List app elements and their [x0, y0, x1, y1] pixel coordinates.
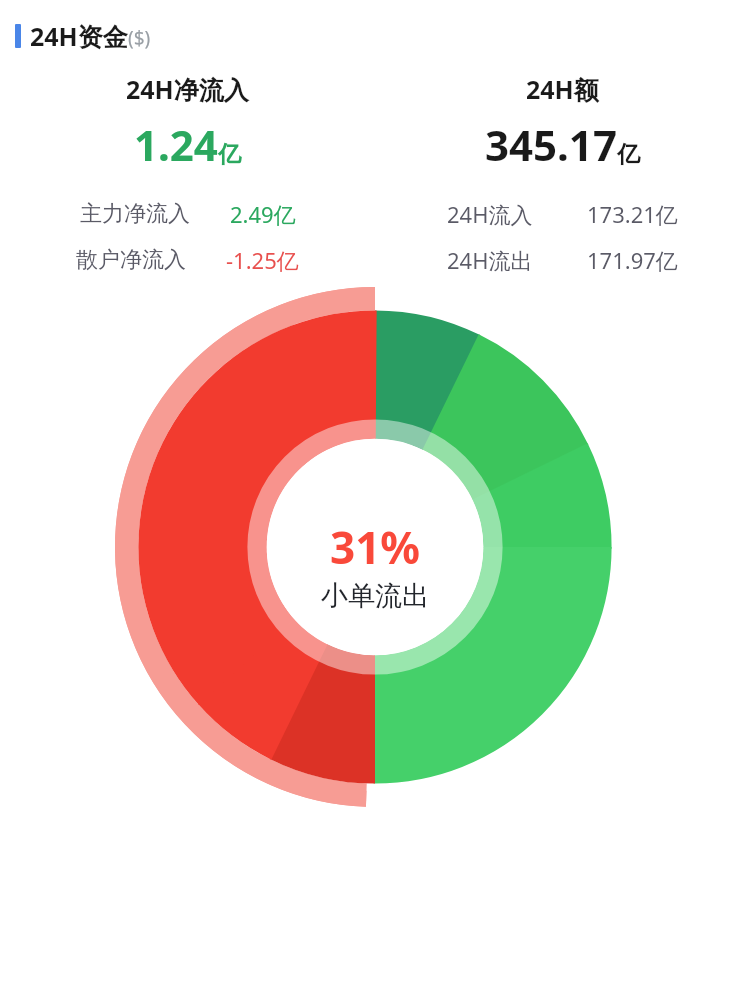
staticText: 24H资金 — [30, 19, 128, 53]
staticText: 24H额 — [526, 72, 599, 106]
staticText: 2.49亿 — [230, 199, 296, 229]
staticText: 345.17 — [485, 116, 617, 173]
staticText: 24H流入 — [447, 199, 587, 229]
staticText: ($) — [128, 25, 151, 51]
staticText: 小单流出 — [321, 579, 429, 613]
button[interactable]: 24H流入 — [447, 199, 678, 229]
staticText: 173.21亿 — [587, 199, 678, 229]
staticText: 主力净流入 — [80, 200, 230, 228]
button[interactable]: 主力净流入 — [80, 199, 296, 229]
button[interactable]: 24H额 — [375, 72, 750, 275]
staticText: 1.24 — [134, 116, 218, 173]
staticText: 亿 — [617, 140, 640, 169]
staticText: -1.25亿 — [226, 245, 299, 275]
button[interactable]: 散户净流入 — [76, 245, 299, 275]
button[interactable]: 24小时资金流向占比环形图 — [115, 287, 635, 807]
staticText: 24H净流入 — [126, 72, 249, 106]
staticText: 31% — [330, 517, 421, 577]
staticText: 散户净流入 — [76, 246, 226, 274]
button[interactable]: 24H流出 — [447, 245, 678, 275]
button[interactable]: 24H净流入 — [0, 72, 375, 275]
staticText: 24H流出 — [447, 245, 587, 275]
staticText: 亿 — [218, 140, 241, 169]
staticText: 171.97亿 — [587, 245, 678, 275]
button[interactable]: 24H资金 — [0, 0, 750, 72]
